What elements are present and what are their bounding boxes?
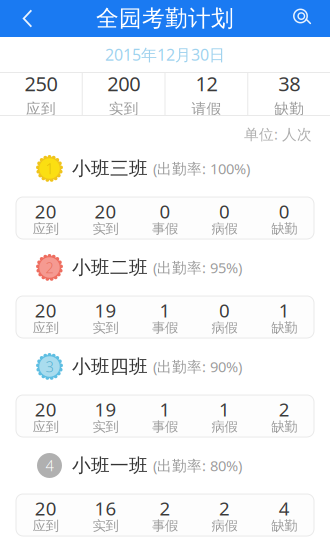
staticText: 1 <box>279 298 290 323</box>
staticText: 19 <box>94 397 116 422</box>
staticText: 0 <box>159 199 170 224</box>
button[interactable]: 4 <box>0 437 330 494</box>
staticText: 小班四班 <box>72 355 148 378</box>
staticText: 缺勤 <box>274 100 304 118</box>
staticText: (出勤率: 95%) <box>153 258 242 277</box>
staticText: 事假 <box>152 320 178 336</box>
staticText: 病假 <box>212 320 238 336</box>
staticText: 小班三班 <box>72 157 148 180</box>
staticText: 0 <box>219 298 230 323</box>
staticText: 12 <box>195 70 217 97</box>
staticText: 1 <box>219 397 230 422</box>
staticText: 缺勤 <box>271 419 297 435</box>
staticText: 实到 <box>92 419 118 435</box>
button[interactable]: 搜索 <box>286 0 330 37</box>
button[interactable]: 2 <box>0 239 330 296</box>
staticText: 实到 <box>92 518 118 534</box>
staticText: 应到 <box>26 100 56 118</box>
staticText: 3 <box>45 357 53 376</box>
staticText: 事假 <box>152 419 178 435</box>
button[interactable]: 1 <box>0 140 330 197</box>
staticText: 应到 <box>33 518 59 534</box>
staticText: 250 <box>24 70 57 97</box>
staticText: 20 <box>94 199 116 224</box>
staticText: (出勤率: 100%) <box>153 159 250 178</box>
staticText: 20 <box>35 496 57 521</box>
staticText: 1 <box>159 397 170 422</box>
staticText: 全园考勤计划 <box>96 5 234 32</box>
staticText: 事假 <box>152 221 178 237</box>
staticText: 4 <box>279 496 290 521</box>
staticText: 事假 <box>152 518 178 534</box>
staticText: 2 <box>219 496 230 521</box>
staticText: 缺勤 <box>271 320 297 336</box>
staticText: 缺勤 <box>271 518 297 534</box>
staticText: 2 <box>45 258 53 277</box>
staticText: (出勤率: 80%) <box>153 456 242 475</box>
staticText: 2 <box>279 397 290 422</box>
staticText: 实到 <box>92 320 118 336</box>
staticText: 20 <box>35 298 57 323</box>
staticText: 1 <box>159 298 170 323</box>
button[interactable]: 返回 <box>0 0 44 37</box>
staticText: 应到 <box>33 419 59 435</box>
staticText: 实到 <box>109 100 139 118</box>
staticText: 应到 <box>33 320 59 336</box>
staticText: 请假 <box>191 100 221 118</box>
staticText: 20 <box>35 199 57 224</box>
staticText: 单位: 人次 <box>244 124 312 144</box>
staticText: 38 <box>278 70 300 97</box>
staticText: 病假 <box>212 419 238 435</box>
staticText: 2015年12月30日 <box>105 44 225 65</box>
button[interactable]: 3 <box>0 338 330 395</box>
staticText: 小班二班 <box>72 256 148 279</box>
staticText: 缺勤 <box>271 221 297 237</box>
staticText: 0 <box>279 199 290 224</box>
staticText: 实到 <box>92 221 118 237</box>
staticText: 20 <box>35 397 57 422</box>
staticText: 0 <box>219 199 230 224</box>
staticText: 病假 <box>212 518 238 534</box>
staticText: 16 <box>94 496 116 521</box>
staticText: 病假 <box>212 221 238 237</box>
staticText: 应到 <box>33 221 59 237</box>
staticText: 4 <box>45 456 53 475</box>
staticText: 200 <box>107 70 140 97</box>
staticText: 1 <box>45 159 53 178</box>
staticText: 小班一班 <box>72 454 148 477</box>
staticText: 19 <box>94 298 116 323</box>
staticText: 2 <box>159 496 170 521</box>
staticText: (出勤率: 90%) <box>153 357 242 376</box>
